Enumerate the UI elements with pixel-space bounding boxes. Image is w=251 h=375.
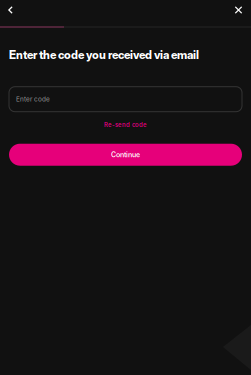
- staticText: Enter the code you received via email: [9, 48, 199, 62]
- button[interactable]: Re-send code: [9, 118, 242, 132]
- staticText: Enter code: [16, 95, 50, 103]
- button[interactable]: Back: [1, 0, 20, 20]
- button[interactable]: Continue: [9, 144, 242, 166]
- button[interactable]: Close: [229, 0, 248, 20]
- button[interactable]: Enter code: [9, 87, 242, 112]
- staticText: Continue: [111, 150, 140, 159]
- staticText: Re-send code: [104, 121, 147, 128]
